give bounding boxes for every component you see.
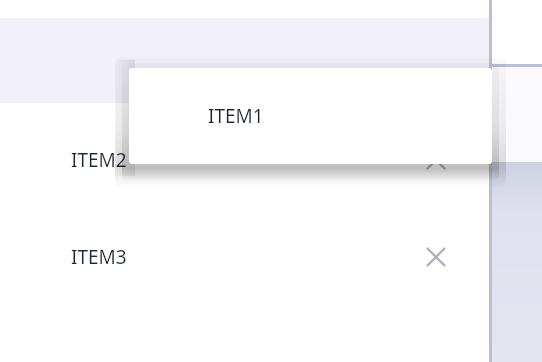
button[interactable]: ITEM1 (129, 68, 492, 164)
button[interactable]: ITEM2 (0, 130, 489, 190)
staticText: ITEM3 (71, 244, 127, 270)
staticText: ITEM1 (208, 103, 264, 129)
button[interactable]: ITEM3 (0, 227, 489, 287)
staticText: ITEM2 (71, 147, 127, 173)
button[interactable]: Remove ITEM2 (418, 142, 454, 178)
button[interactable]: Remove ITEM3 (418, 239, 454, 275)
